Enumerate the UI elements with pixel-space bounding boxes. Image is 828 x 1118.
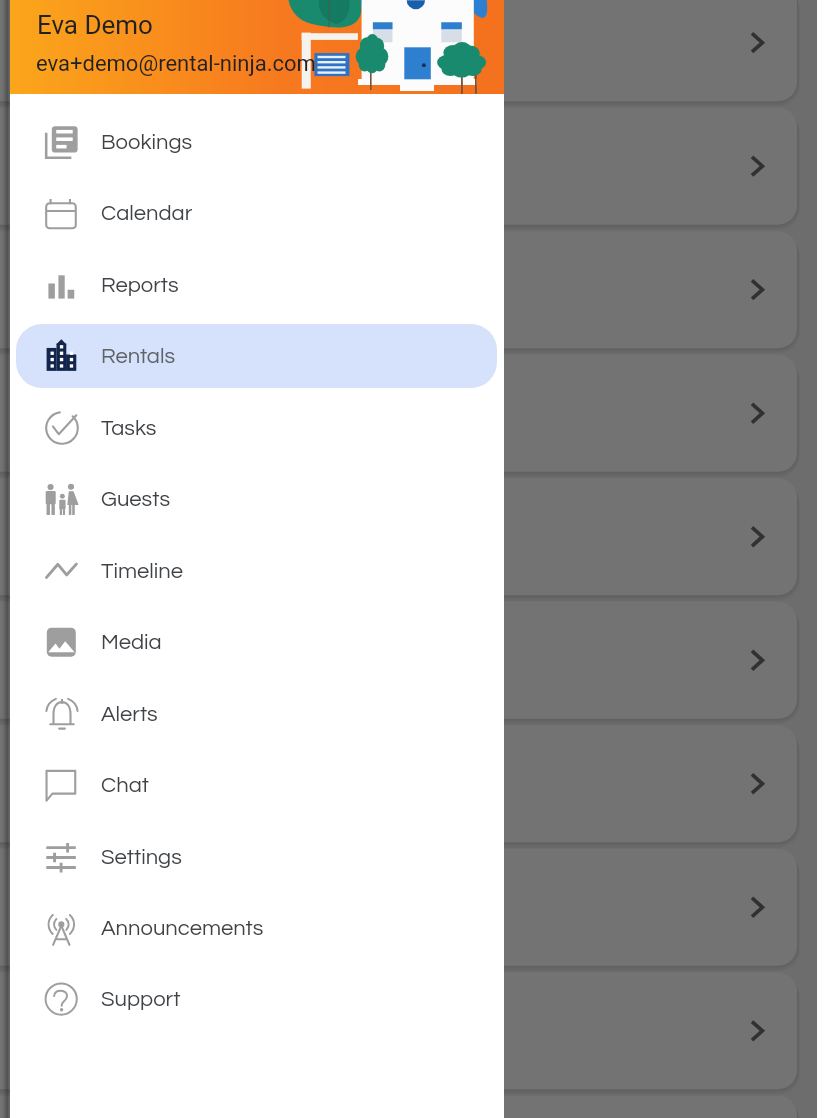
- button[interactable]: Reports: [16, 253, 497, 317]
- staticText: Support: [101, 988, 181, 1011]
- staticText: Announcements: [101, 917, 264, 940]
- staticText: Timeline: [101, 560, 184, 583]
- button[interactable]: Bookings: [16, 110, 497, 174]
- button[interactable]: Guests: [16, 467, 497, 531]
- button[interactable]: Media: [16, 610, 497, 674]
- button[interactable]: Tasks: [16, 396, 497, 460]
- button[interactable]: Chat: [16, 753, 497, 817]
- button[interactable]: Support: [16, 967, 497, 1031]
- button[interactable]: Rentals: [16, 324, 497, 388]
- button[interactable]: Alerts: [16, 682, 497, 746]
- staticText: Reports: [101, 274, 179, 297]
- button[interactable]: Timeline: [16, 539, 497, 603]
- staticText: Settings: [101, 846, 182, 869]
- staticText: eva+demo@rental-ninja.com: [36, 51, 316, 77]
- staticText: Rentals: [101, 345, 176, 368]
- staticText: Tasks: [101, 417, 157, 440]
- staticText: Chat: [101, 774, 149, 797]
- staticText: Bookings: [101, 131, 193, 154]
- staticText: Guests: [101, 488, 170, 511]
- staticText: Calendar: [101, 202, 193, 225]
- button[interactable]: Calendar: [16, 181, 497, 245]
- staticText: Media: [101, 631, 162, 654]
- staticText: Eva Demo: [37, 10, 153, 40]
- staticText: Alerts: [101, 703, 158, 726]
- button[interactable]: Announcements: [16, 896, 497, 960]
- button[interactable]: Settings: [16, 825, 497, 889]
